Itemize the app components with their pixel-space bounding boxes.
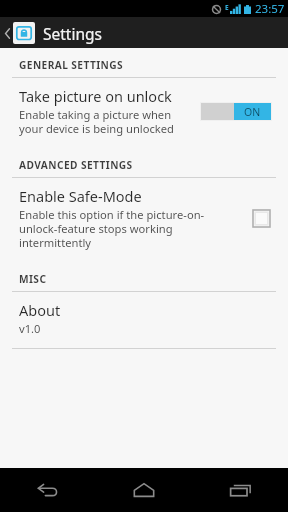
staticText: Settings [43,23,102,44]
button[interactable]: Take picture on unlock [0,78,288,144]
button[interactable]: Enable Safe-Mode [0,178,288,258]
staticText: MISC [19,272,47,286]
staticText: Enable taking a picture when your device… [19,107,190,136]
staticText: ADVANCED SETTINGS [19,158,133,172]
staticText: About [19,300,61,320]
button[interactable]: Up [0,22,108,44]
staticText: Enable this option if the picture-on-unl… [19,207,241,250]
staticText: 23:57 [255,1,285,17]
staticText: E [225,3,229,12]
button[interactable]: Back [0,468,96,512]
staticText: Enable Safe-Mode [19,186,142,206]
button[interactable]: About [0,292,288,344]
button[interactable]: Home [96,468,192,512]
staticText: v1.0 [19,321,41,336]
staticText: ON [244,105,261,119]
staticText: Take picture on unlock [19,86,172,106]
staticText: GENERAL SETTINGS [19,58,124,72]
button[interactable]: Recent apps [192,468,288,512]
button[interactable]: Enable Safe-Mode checkbox, unchecked [249,206,274,231]
button[interactable]: Take picture on unlock toggle, on [198,100,274,123]
